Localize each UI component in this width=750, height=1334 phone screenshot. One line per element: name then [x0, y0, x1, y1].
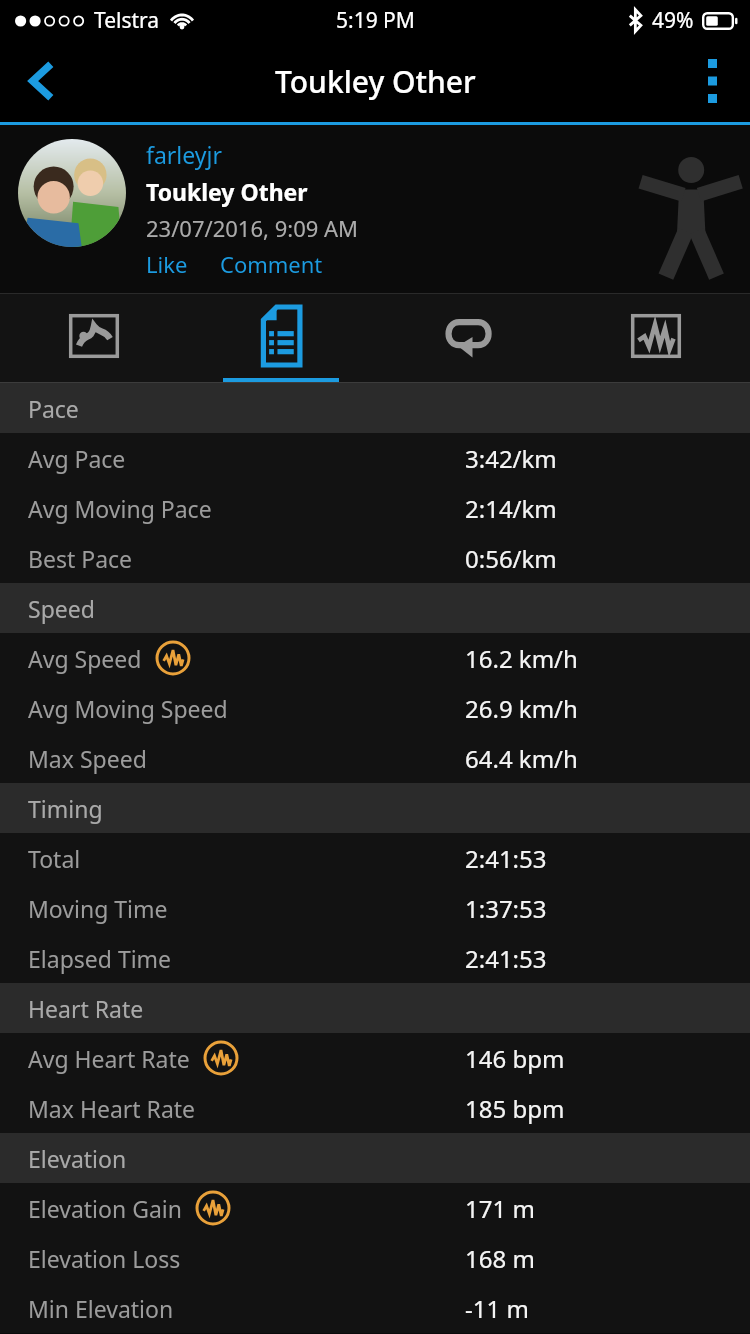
- staticText: Toukley Other: [275, 61, 476, 102]
- staticText: 171 m: [465, 1192, 535, 1225]
- staticText: Timing: [28, 793, 103, 824]
- staticText: Comment: [220, 249, 323, 279]
- button[interactable]: Elevation Gain: [0, 1183, 750, 1233]
- staticText: Elevation Gain: [28, 1193, 182, 1224]
- staticText: 146 bpm: [465, 1042, 565, 1075]
- staticText: 26.9 km/h: [465, 692, 578, 725]
- staticText: 16.2 km/h: [465, 642, 578, 675]
- staticText: Avg Heart Rate: [28, 1043, 190, 1074]
- button[interactable]: Map: [0, 294, 187, 382]
- staticText: Total: [28, 843, 81, 874]
- button[interactable]: Comment: [220, 249, 323, 279]
- staticText: 0:56/km: [465, 542, 557, 575]
- staticText: 2:41:53: [465, 942, 547, 975]
- staticText: Speed: [28, 593, 95, 624]
- button[interactable]: Avg Speed: [0, 633, 750, 683]
- button[interactable]: More options: [674, 40, 750, 122]
- staticText: Max Heart Rate: [28, 1093, 196, 1124]
- button[interactable]: Best Pace: [0, 533, 750, 583]
- button[interactable]: Min Elevation: [0, 1283, 750, 1333]
- staticText: Avg Pace: [28, 443, 126, 474]
- staticText: Best Pace: [28, 543, 133, 574]
- button[interactable]: Back: [0, 40, 84, 122]
- button[interactable]: Elevation Loss: [0, 1233, 750, 1283]
- staticText: Like: [146, 249, 188, 279]
- staticText: 2:14/km: [465, 492, 557, 525]
- button[interactable]: Elapsed Time: [0, 933, 750, 983]
- staticText: Max Speed: [28, 743, 147, 774]
- staticText: farleyjr: [146, 139, 222, 170]
- staticText: 168 m: [465, 1242, 535, 1275]
- staticText: Elevation: [28, 1143, 127, 1174]
- button[interactable]: Avg Moving Speed: [0, 683, 750, 733]
- staticText: Avg Speed: [28, 643, 142, 674]
- button[interactable]: Max Heart Rate: [0, 1083, 750, 1133]
- staticText: 185 bpm: [465, 1092, 565, 1125]
- staticText: 49%: [652, 6, 694, 35]
- staticText: Telstra: [94, 6, 160, 35]
- staticText: Moving Time: [28, 893, 168, 924]
- button[interactable]: farleyjr: [146, 139, 222, 170]
- staticText: 3:42/km: [465, 442, 557, 475]
- button[interactable]: Details: [187, 294, 374, 382]
- button[interactable]: Avg Pace: [0, 433, 750, 483]
- button[interactable]: Charts: [562, 294, 750, 382]
- button[interactable]: Avg Moving Pace: [0, 483, 750, 533]
- button[interactable]: Max Speed: [0, 733, 750, 783]
- button[interactable]: Avg Heart Rate: [0, 1033, 750, 1083]
- staticText: Pace: [28, 393, 79, 424]
- button[interactable]: Laps: [374, 294, 562, 382]
- staticText: 5:19 PM: [336, 6, 415, 35]
- staticText: 2:41:53: [465, 842, 547, 875]
- button[interactable]: Like: [146, 249, 188, 279]
- staticText: 23/07/2016, 9:09 AM: [146, 213, 359, 243]
- staticText: Elevation Loss: [28, 1243, 181, 1274]
- staticText: Toukley Other: [146, 176, 308, 207]
- button[interactable]: Moving Time: [0, 883, 750, 933]
- staticText: Elapsed Time: [28, 943, 172, 974]
- button[interactable]: Profile photo: [18, 139, 126, 247]
- staticText: Avg Moving Speed: [28, 693, 228, 724]
- staticText: 64.4 km/h: [465, 742, 578, 775]
- button[interactable]: Total: [0, 833, 750, 883]
- staticText: 1:37:53: [465, 892, 547, 925]
- staticText: -11 m: [465, 1292, 529, 1325]
- staticText: Heart Rate: [28, 993, 144, 1024]
- staticText: Avg Moving Pace: [28, 493, 212, 524]
- staticText: Min Elevation: [28, 1293, 174, 1324]
